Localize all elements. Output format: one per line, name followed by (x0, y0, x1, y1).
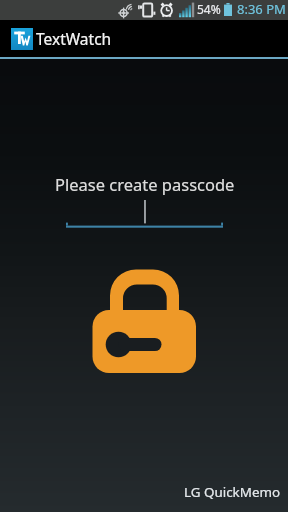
staticText: Please create passcode (55, 173, 235, 195)
button[interactable]: Passcode entry (66, 199, 223, 228)
staticText: 8:36 PM (237, 0, 286, 18)
other: Locked padlock (92, 268, 197, 375)
other: TextWatch app icon (11, 28, 33, 50)
staticText: TextWatch (36, 28, 112, 49)
staticText: LG QuickMemo (184, 483, 281, 501)
staticText: 54% (197, 1, 221, 17)
button[interactable]: TextWatch app icon (0, 20, 288, 57)
